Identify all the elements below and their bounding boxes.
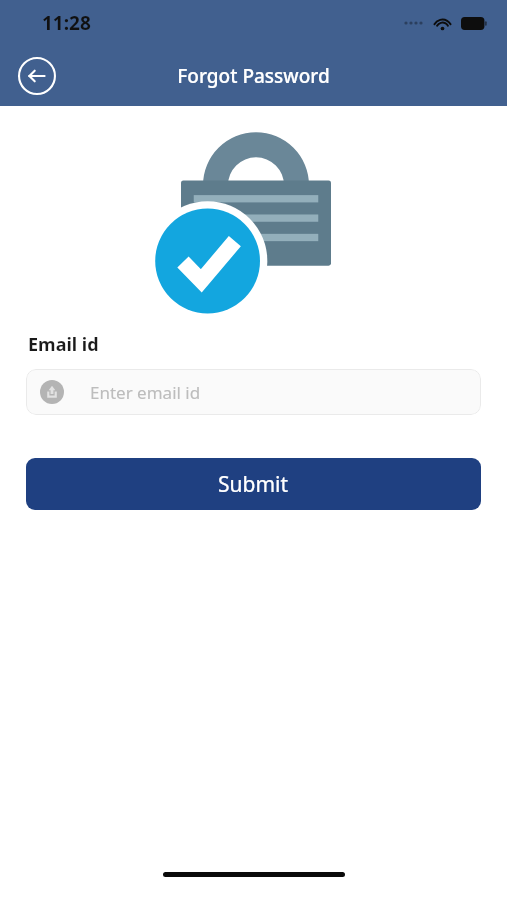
button[interactable]: Back	[14, 53, 60, 99]
button[interactable]: Submit	[26, 458, 481, 510]
staticText: Enter email id	[90, 381, 201, 404]
button[interactable]: Enter email id	[26, 369, 481, 415]
staticText: Email id	[28, 332, 99, 357]
staticText: Forgot Password	[177, 63, 330, 89]
staticText: Submit	[218, 470, 289, 499]
staticText: 11:28	[42, 10, 91, 36]
